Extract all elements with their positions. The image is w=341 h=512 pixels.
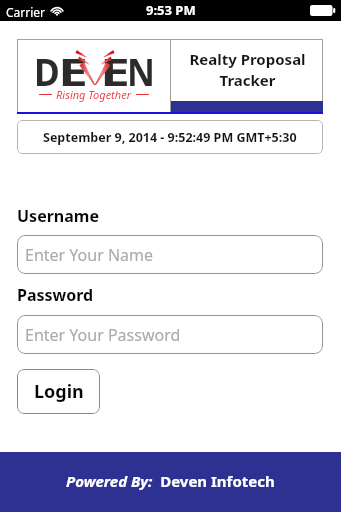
staticText: N (127, 46, 156, 96)
staticText: Username (17, 205, 99, 227)
staticText: D (34, 46, 61, 96)
staticText: 9:53 PM (146, 1, 196, 19)
staticText: E (58, 46, 88, 96)
button[interactable]: Login (17, 369, 100, 414)
staticText: Realty Proposal Tracker (189, 49, 306, 91)
other: Wi-Fi signal (50, 5, 64, 16)
button[interactable]: Enter Your Name (17, 235, 323, 274)
staticText: Login (34, 379, 84, 404)
staticText: Powered By: Deven Infotech (66, 471, 275, 491)
staticText: Enter Your Password (25, 324, 181, 346)
staticText: September 9, 2014 - 9:52:49 PM GMT+5:30 (43, 129, 297, 146)
staticText: Enter Your Name (25, 244, 154, 266)
other: Battery (310, 5, 336, 16)
staticText: Rising Together (56, 87, 132, 102)
staticText: Password (17, 284, 94, 306)
button[interactable]: Enter Your Password (17, 315, 323, 354)
staticText: E (100, 46, 130, 96)
staticText: Carrier (6, 4, 46, 20)
